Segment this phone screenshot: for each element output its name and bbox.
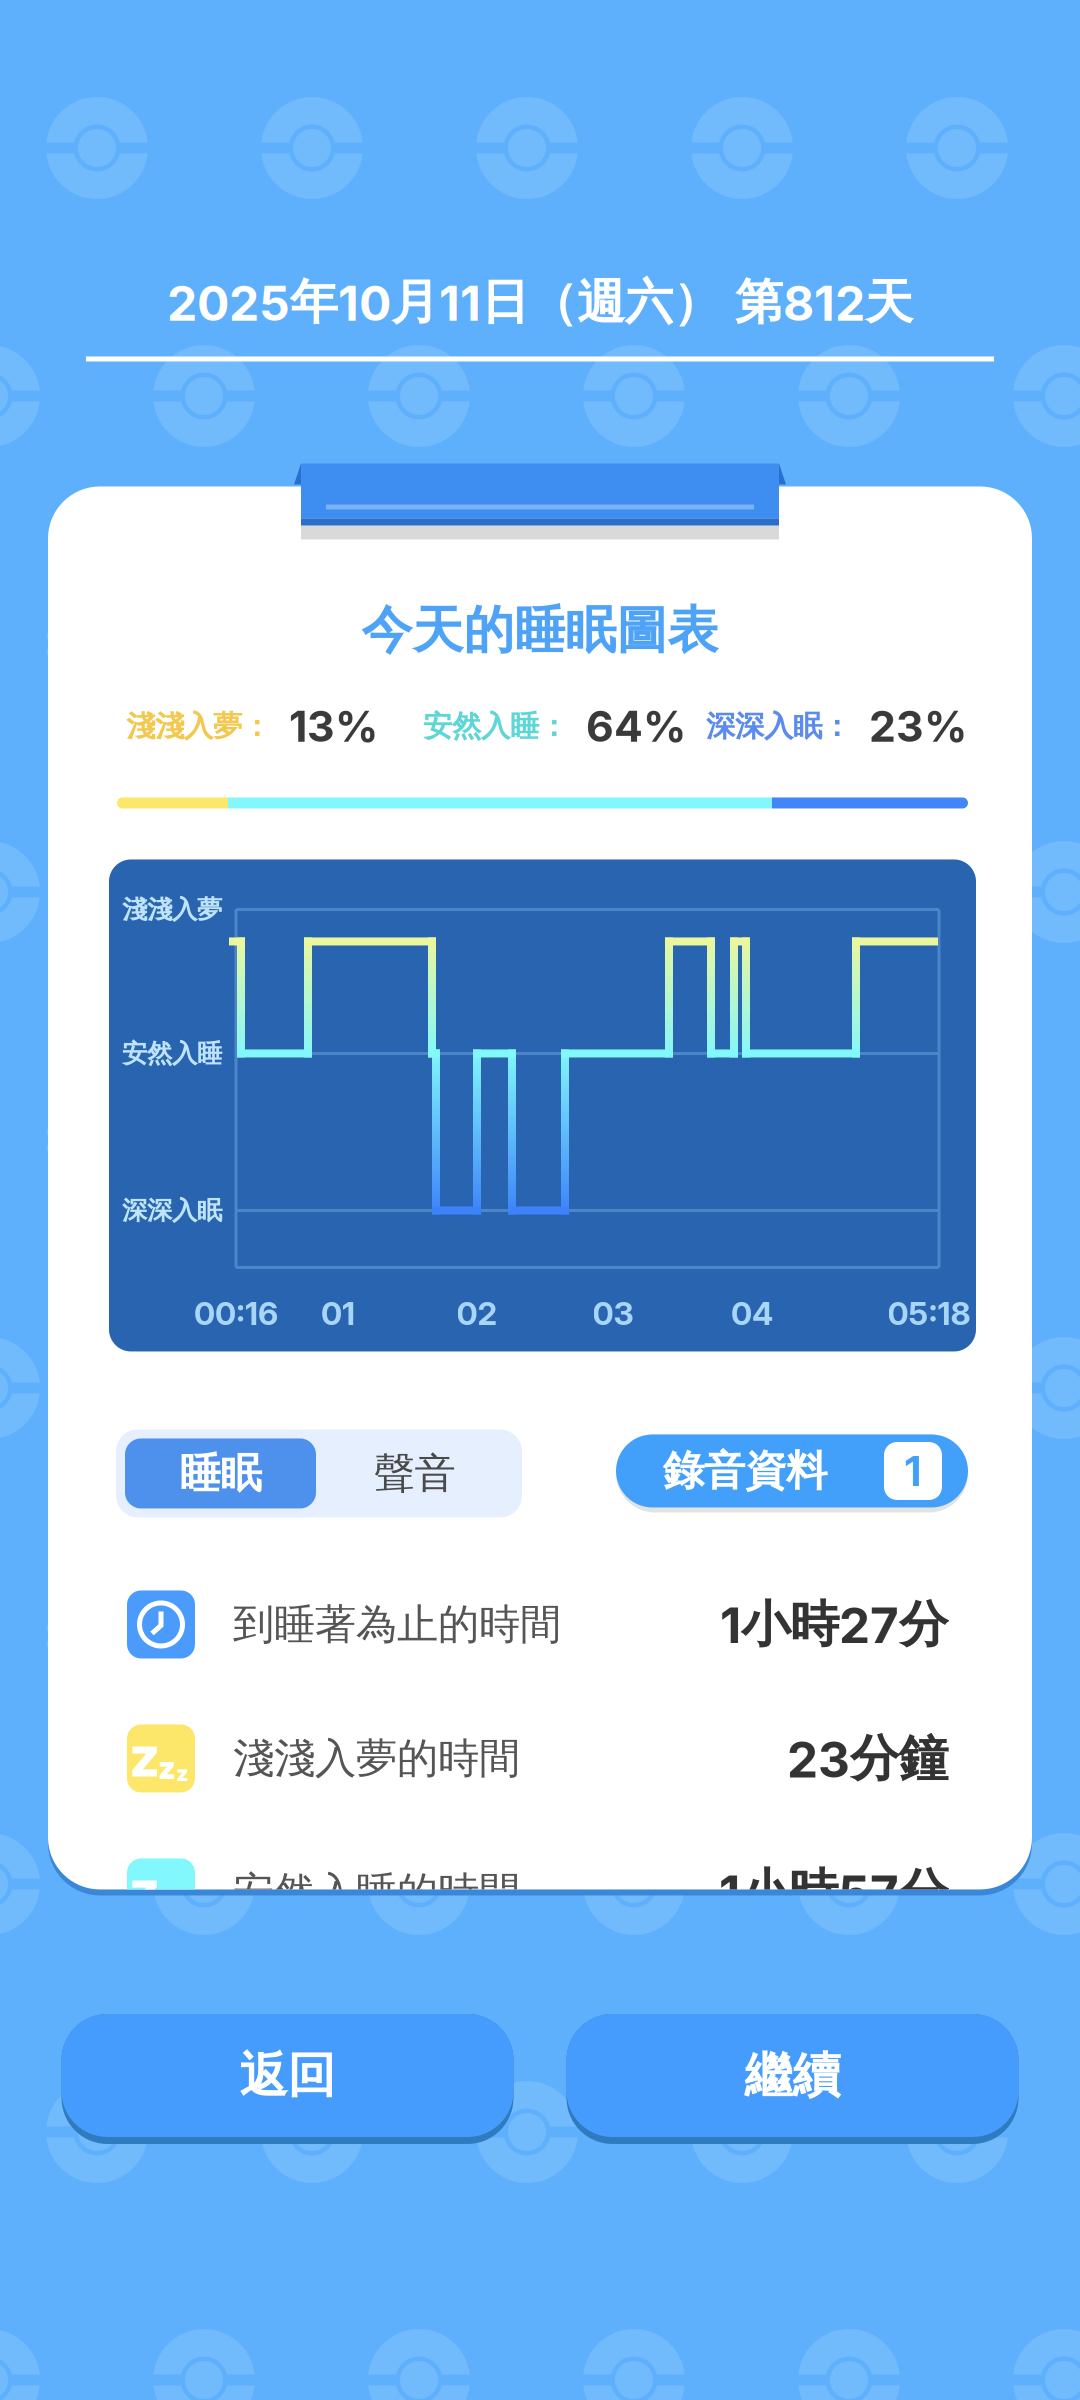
staticText: 到睡著為止的時間 [233,1598,561,1650]
staticText: 23分鐘 [787,1727,948,1789]
staticText: 2025年10月11日（週六） 第812天 [167,272,913,332]
button[interactable]: 繼續 [566,2014,1018,2144]
staticText: 1小時57分 [719,1861,948,1923]
staticText: Z [131,1870,158,1920]
staticText: 04 [731,1294,773,1333]
staticText: Z [131,1736,158,1786]
staticText: 深深入眠： [706,708,851,745]
staticText: 05:18 [887,1294,970,1333]
button[interactable]: 睡眠 [125,1438,316,1508]
staticText: z [158,1749,176,1786]
staticText: 01 [321,1294,355,1333]
staticText: 聲音 [373,1447,455,1499]
staticText: 13% [289,700,378,752]
staticText: 淺淺入夢： [126,708,271,745]
staticText: 23% [869,700,967,752]
button[interactable]: 返回 [61,2014,513,2144]
staticText: 00:16 [194,1294,278,1333]
staticText: 錄音資料 [663,1445,827,1497]
staticText: 淺淺入夢 [122,893,222,925]
staticText: 繼續 [744,2045,840,2106]
button[interactable]: 聲音 [316,1438,513,1508]
staticText: z [176,1895,189,1920]
staticText: z [158,1883,176,1920]
staticText: 返回 [239,2045,335,2106]
staticText: 03 [592,1294,633,1333]
staticText: 睡眠 [179,1447,261,1499]
staticText: 1小時27分 [720,1593,948,1655]
staticText: 64% [586,700,686,752]
staticText: 淺淺入夢的時間 [233,1732,520,1784]
staticText: 安然入睡： [423,708,568,745]
staticText: 今天的睡眠圖表 [361,599,718,662]
staticText: 02 [456,1294,497,1333]
staticText: 深深入眠 [122,1194,222,1226]
staticText: 1 [905,1446,921,1496]
staticText: 安然入睡的時間 [233,1866,520,1918]
staticText: z [176,1761,189,1786]
button[interactable]: 錄音資料 [616,1434,968,1512]
staticText: 安然入睡 [122,1037,222,1069]
